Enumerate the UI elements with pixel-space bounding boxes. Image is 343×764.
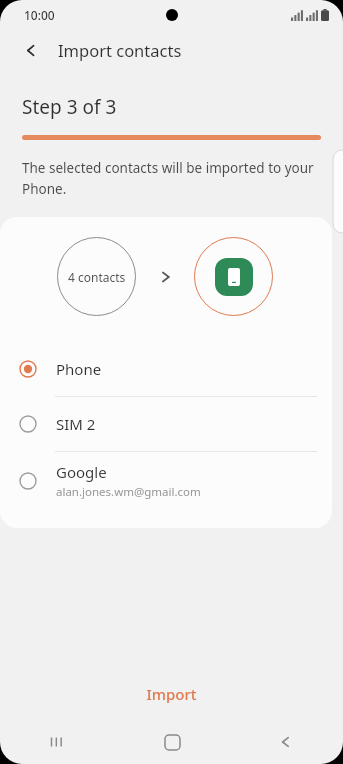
staticText: The selected contacts will be imported t… [22, 159, 317, 198]
staticText: 10:00 [24, 7, 55, 23]
button[interactable]: Back [229, 720, 343, 764]
button[interactable]: Google [0, 452, 332, 510]
button[interactable]: Import [0, 668, 343, 720]
button[interactable]: Recent apps [0, 720, 115, 764]
staticText: Import [146, 684, 197, 704]
staticText: Phone [56, 359, 102, 379]
staticText: Import contacts [58, 39, 182, 61]
button[interactable]: Home [115, 720, 229, 764]
button[interactable]: Back [16, 35, 46, 65]
staticText: SIM 2 [56, 414, 96, 434]
staticText: alan.jones.wm@gmail.com [56, 484, 201, 500]
button[interactable]: Phone [0, 342, 332, 396]
staticText: 4 contacts [68, 269, 126, 285]
staticText: Google [56, 462, 107, 482]
button[interactable]: SIM 2 [0, 397, 332, 451]
staticText: Step 3 of 3 [22, 94, 117, 120]
